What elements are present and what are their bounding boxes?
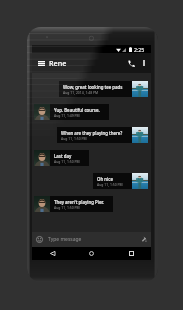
button[interactable]: Insert emoji [34,232,45,247]
staticText: Aug 11, 1:50 PM [54,159,80,164]
button[interactable]: When are they playing there? [57,127,148,143]
staticText: When are they playing there? [61,130,123,136]
button[interactable]: Home [81,247,101,260]
staticText: Aug 11, 1:50 PM [61,136,87,141]
staticText: Aug 11, 2014, 1:48 PM [63,90,99,95]
staticText: They aren't playing Pier. [54,199,104,205]
button[interactable]: Yup. Beautiful course. [34,104,109,120]
staticText: Type message [48,236,82,243]
button[interactable]: Back [42,247,62,260]
button[interactable]: Last day [34,150,89,166]
staticText: Rene [49,58,67,68]
button[interactable]: Attach [138,232,149,247]
staticText: Yup. Beautiful course. [54,107,100,113]
staticText: Aug 11, 1:50 PM [54,205,80,210]
button[interactable]: Recent apps [121,247,141,260]
button[interactable]: More options [138,53,149,73]
button[interactable]: Call [125,53,138,73]
button[interactable]: Wow, great looking tee pads [59,81,148,97]
staticText: Aug 11, 1:49 PM [54,113,80,118]
button[interactable]: Oh nice [93,173,148,189]
staticText: 2:25 [134,46,145,53]
staticText: Wow, great looking tee pads [63,84,123,90]
staticText: Oh nice [97,176,113,182]
staticText: Last day [54,153,72,159]
button[interactable]: Open navigation drawer [35,53,47,73]
button[interactable]: They aren't playing Pier. [34,196,113,212]
staticText: Aug 11, 1:50 PM [97,182,123,187]
